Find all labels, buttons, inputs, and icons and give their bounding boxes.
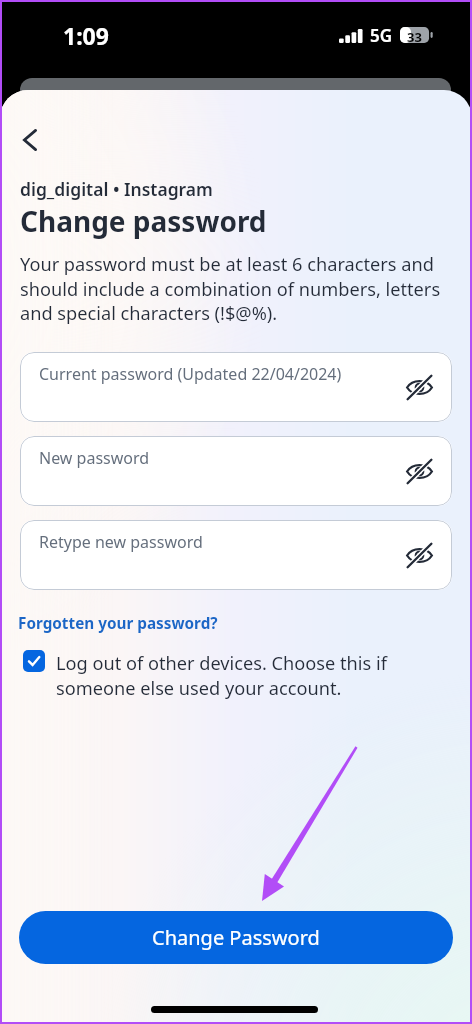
staticText: Retype new password <box>39 531 203 553</box>
button[interactable]: Retype new password <box>20 520 452 590</box>
button[interactable]: Show password <box>403 371 435 403</box>
button[interactable]: Forgotten your password? <box>17 613 219 634</box>
button[interactable]: Log out of other devices. Choose this if… <box>18 645 423 701</box>
staticText: Change password <box>20 202 267 240</box>
staticText: Log out of other devices. Choose this if… <box>56 651 418 700</box>
button[interactable]: New password <box>20 436 452 506</box>
button[interactable]: Show password <box>403 455 435 487</box>
button[interactable]: Change Password <box>19 911 453 964</box>
staticText: 33 <box>407 28 422 46</box>
staticText: dig_digital • Instagram <box>20 177 213 201</box>
staticText: Change Password <box>152 924 320 951</box>
staticText: Your password must be at least 6 charact… <box>20 252 448 325</box>
button[interactable]: Show password <box>403 539 435 571</box>
staticText: 1:09 <box>63 20 109 51</box>
staticText: New password <box>39 447 150 469</box>
button[interactable]: Current password (Updated 22/04/2024) <box>20 352 452 422</box>
button[interactable]: Back <box>8 118 52 162</box>
staticText: 5G <box>370 24 393 47</box>
staticText: Forgotten your password? <box>18 613 218 634</box>
staticText: Current password (Updated 22/04/2024) <box>39 363 342 385</box>
